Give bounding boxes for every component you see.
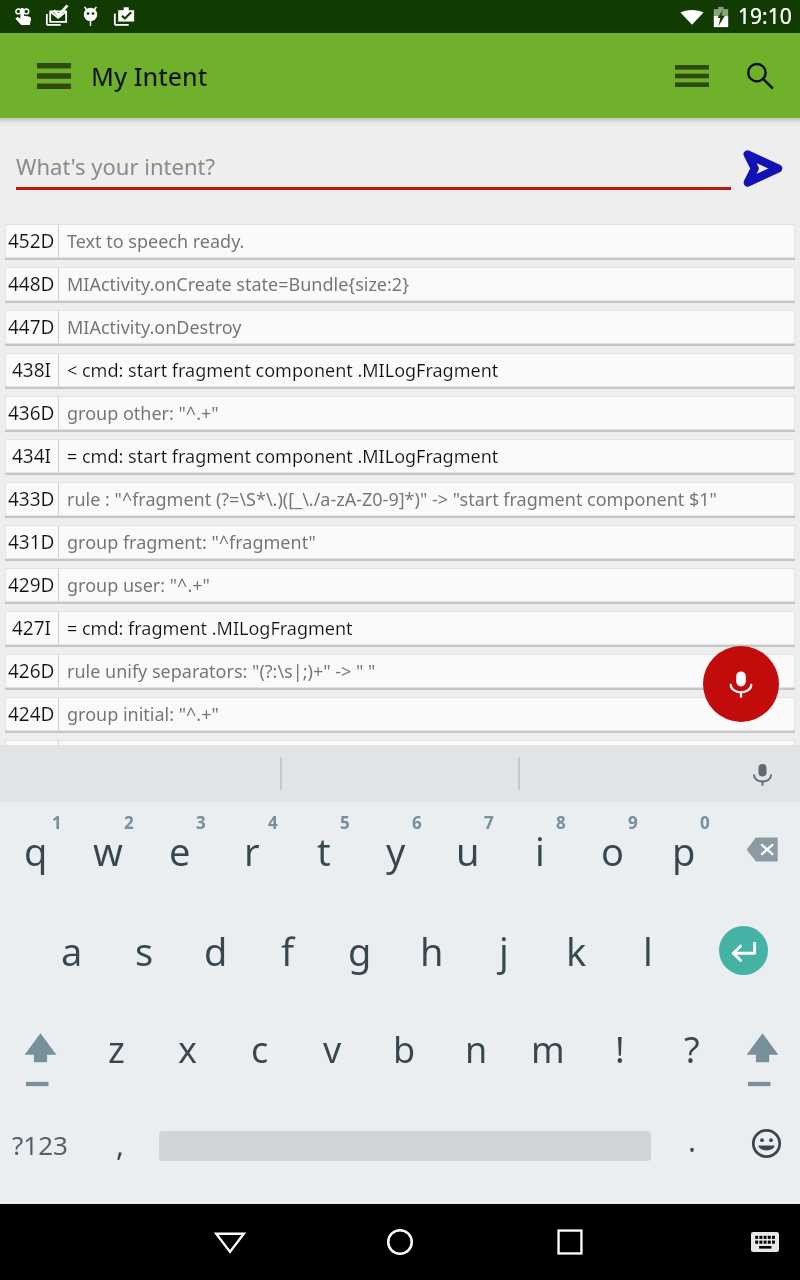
staticText: a (61, 925, 83, 977)
button[interactable]: Navigation drawer (30, 52, 78, 100)
button[interactable]: 447D (5, 310, 795, 344)
button[interactable]: k (540, 901, 612, 1000)
staticText: rule unify separators: "(?:\s|;)+" -> " … (67, 659, 376, 684)
staticText: u (456, 825, 480, 877)
button[interactable]: Recents (540, 1204, 600, 1280)
staticText: 424D (8, 701, 55, 727)
staticText: = cmd: start fragment component .MILogFr… (67, 444, 499, 469)
button[interactable]: 438I (5, 353, 795, 387)
button[interactable]: x (152, 1000, 224, 1098)
button[interactable]: ?123 (0, 1098, 80, 1204)
button[interactable]: 436D (5, 396, 795, 430)
button[interactable]: c (224, 1000, 296, 1098)
button[interactable]: f (252, 901, 324, 1000)
button[interactable]: Enter (693, 901, 793, 1000)
staticText: 447D (8, 314, 55, 340)
button[interactable]: s (108, 901, 180, 1000)
button[interactable]: Voice typing (745, 757, 779, 791)
staticText: 4 (268, 811, 278, 834)
button[interactable]: Search (732, 48, 788, 104)
button[interactable]: b (368, 1000, 440, 1098)
staticText: 2 (124, 811, 134, 834)
button[interactable]: 452D (5, 224, 795, 258)
button[interactable]: n (440, 1000, 512, 1098)
button[interactable]: h (396, 901, 468, 1000)
staticText: , (116, 1124, 125, 1165)
staticText: p (672, 825, 696, 877)
staticText: group initial: "^.+" (67, 702, 219, 727)
button[interactable]: 5 (288, 802, 360, 901)
button[interactable]: 448D (5, 267, 795, 301)
staticText: i (535, 825, 545, 877)
staticText: x (178, 1025, 198, 1074)
button[interactable]: v (296, 1000, 368, 1098)
button[interactable]: 431D (5, 525, 795, 559)
staticText: 452D (8, 228, 55, 254)
staticText: 429D (8, 572, 55, 598)
button[interactable]: 423D (5, 740, 795, 774)
button[interactable]: 3 (144, 802, 216, 901)
button[interactable]: 429D (5, 568, 795, 602)
staticText: 434I (12, 443, 52, 469)
button[interactable]: 424D (5, 697, 795, 731)
button[interactable]: . (660, 1098, 725, 1204)
button[interactable]: 2 (72, 802, 144, 901)
button[interactable]: , (90, 1098, 150, 1204)
button[interactable]: ? (656, 1000, 728, 1098)
button[interactable]: 433D (5, 482, 795, 516)
button[interactable]: m (512, 1000, 584, 1098)
staticText: 7 (484, 811, 494, 834)
staticText: s (135, 925, 154, 977)
button[interactable]: ! (584, 1000, 656, 1098)
button[interactable]: 427I (5, 611, 795, 645)
staticText: 3 (196, 811, 206, 834)
staticText: My Intent (91, 59, 208, 93)
staticText: . (688, 1120, 697, 1161)
button[interactable]: 9 (576, 802, 648, 901)
button[interactable]: 8 (504, 802, 576, 901)
button[interactable]: Space (155, 1098, 655, 1204)
button[interactable]: d (180, 901, 252, 1000)
button[interactable]: j (468, 901, 540, 1000)
button[interactable]: Home (370, 1204, 430, 1280)
button[interactable]: 1 (0, 802, 72, 901)
staticText: f (281, 925, 295, 977)
button[interactable]: 426D (5, 654, 795, 688)
staticText: m (531, 1025, 565, 1074)
button[interactable]: 7 (432, 802, 504, 901)
staticText: v (323, 1025, 342, 1074)
staticText: 433D (8, 486, 55, 512)
button[interactable]: Emoji (730, 1098, 800, 1204)
staticText: MIActivity.onDestroy (67, 315, 242, 340)
button[interactable]: 4 (216, 802, 288, 901)
button[interactable]: l (612, 901, 684, 1000)
button[interactable]: 434I (5, 439, 795, 473)
staticText: < cmd: start fragment component .MILogFr… (67, 358, 499, 383)
staticText: ! (615, 1025, 625, 1074)
button[interactable]: g (324, 901, 396, 1000)
button[interactable]: Intent input field (16, 134, 731, 190)
staticText: j (499, 925, 509, 977)
staticText: MIActivity.onCreate state=Bundle{size:2} (67, 272, 409, 297)
staticText: q (24, 825, 48, 877)
staticText: k (566, 925, 587, 977)
staticText: g (348, 925, 372, 977)
button[interactable]: Menu (664, 48, 720, 104)
button[interactable]: Shift (725, 1000, 800, 1098)
staticText: 438I (12, 357, 52, 383)
staticText: 6 (412, 811, 422, 834)
button[interactable]: a (36, 901, 108, 1000)
button[interactable]: 6 (360, 802, 432, 901)
button[interactable]: z (80, 1000, 152, 1098)
staticText: w (93, 825, 123, 877)
button[interactable]: 0 (648, 802, 720, 901)
button[interactable]: Back (200, 1204, 260, 1280)
staticText: 448D (8, 271, 55, 297)
button[interactable]: Send (732, 133, 792, 203)
button[interactable]: Voice input (703, 646, 779, 722)
button[interactable]: Shift (0, 1000, 80, 1098)
staticText: ?123 (12, 1127, 68, 1162)
button[interactable]: Keyboard (735, 1204, 795, 1280)
button[interactable]: Backspace (720, 802, 800, 901)
